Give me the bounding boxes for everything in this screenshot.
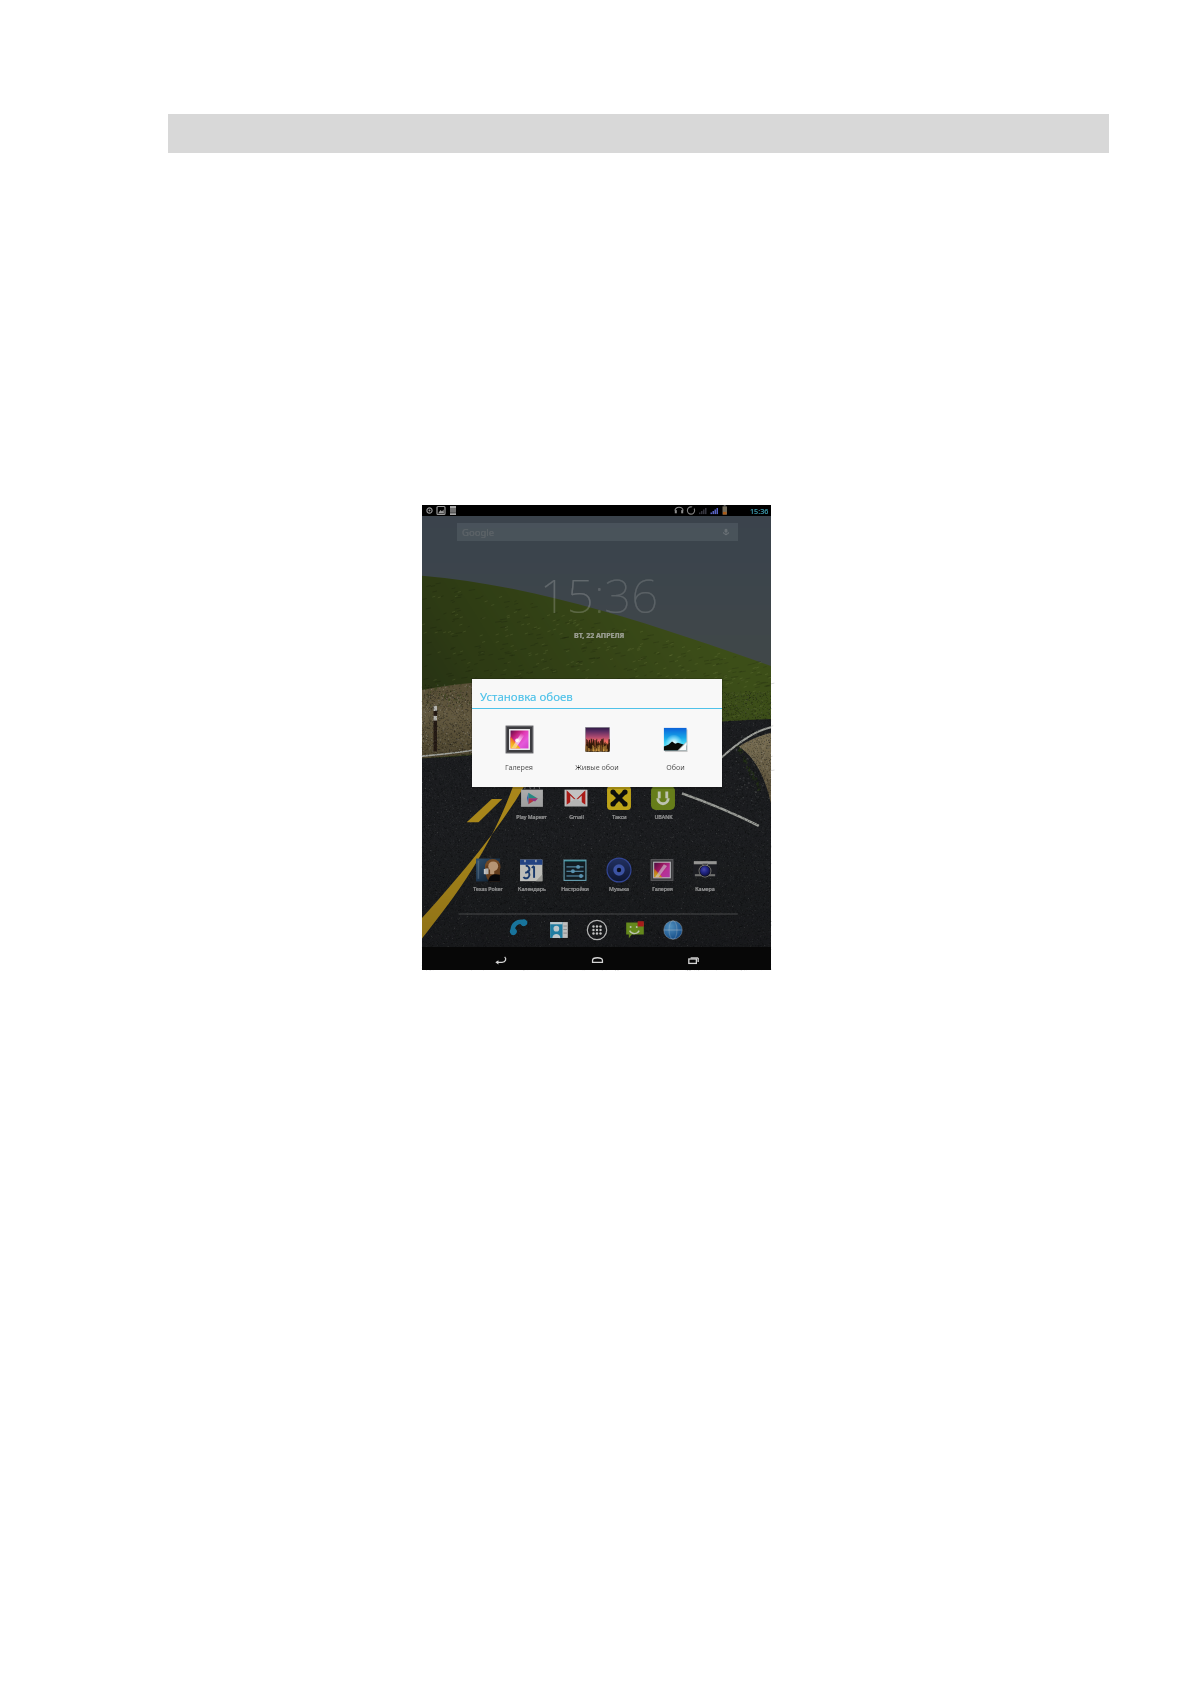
staticText: Календарь: [518, 885, 546, 892]
staticText: Обои: [666, 762, 685, 772]
staticText: Галерея: [652, 885, 673, 892]
button[interactable]: Живые обои: [558, 713, 636, 783]
staticText: Такси: [612, 813, 627, 820]
button[interactable]: Contacts: [548, 919, 570, 941]
button[interactable]: Gmail: [555, 785, 597, 821]
button[interactable]: Настройки: [554, 857, 596, 893]
staticText: ВТ, 22 АПРЕЛЯ: [574, 631, 625, 641]
staticText: Настройки: [561, 885, 589, 892]
staticText: UBANK: [654, 813, 673, 820]
button[interactable]: Музыка: [598, 857, 640, 893]
other: Voice search: [722, 528, 730, 536]
staticText: Gmail: [569, 813, 584, 820]
staticText: Музыка: [609, 885, 629, 892]
button[interactable]: Галерея: [641, 857, 683, 893]
button[interactable]: Texas Poker: [467, 857, 509, 893]
button[interactable]: Back: [482, 949, 518, 969]
staticText: :36: [594, 563, 658, 627]
button[interactable]: Календарь: [511, 857, 553, 893]
button[interactable]: Home: [579, 949, 615, 969]
button[interactable]: Recents: [675, 949, 711, 969]
button[interactable]: Play Маркет: [510, 785, 552, 821]
staticText: Texas Poker: [473, 885, 503, 892]
staticText: Google: [462, 526, 495, 539]
staticText: Установка обоев: [480, 689, 573, 705]
staticText: Галерея: [505, 762, 533, 772]
staticText: Play Маркет: [516, 813, 547, 820]
button[interactable]: Камера: [684, 857, 726, 893]
staticText: Живые обои: [575, 762, 619, 772]
button[interactable]: Галерея: [480, 713, 558, 783]
button[interactable]: Обои: [636, 713, 714, 783]
staticText: 15: [540, 563, 594, 627]
staticText: 15:36: [750, 506, 769, 516]
button[interactable]: Phone: [510, 919, 532, 941]
button[interactable]: Messages: [624, 919, 646, 941]
button[interactable]: Browser: [662, 919, 684, 941]
button[interactable]: Такси: [598, 785, 640, 821]
button[interactable]: All apps: [586, 919, 608, 941]
button[interactable]: UBANK: [642, 785, 684, 821]
staticText: Камера: [695, 885, 715, 892]
